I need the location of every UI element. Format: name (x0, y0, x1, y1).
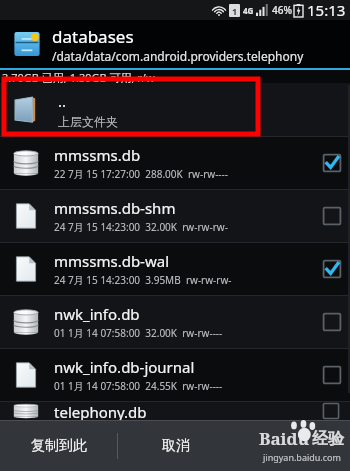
staticText: 上层文件夹 (58, 114, 118, 129)
staticText: 24 7月 15 14:23:00 3.95MB rw-rw-rw- (54, 273, 232, 287)
button[interactable]: telephony.db (0, 402, 350, 420)
staticText: mmssms.db-shm (54, 198, 176, 218)
button[interactable]: Selected mmssms.db (322, 153, 342, 173)
staticText: Baidu (259, 427, 309, 450)
button[interactable]: Select nwk_info.db (322, 312, 342, 332)
button[interactable]: Selected mmssms.db-wal (322, 259, 342, 279)
staticText: telephony.db (54, 402, 147, 420)
staticText: 经验 (312, 429, 344, 449)
button[interactable]: mmssms.db (0, 137, 350, 189)
staticText: 22 7月 15 17:27:00 288.00K rw-rw---- (54, 167, 229, 181)
staticText: 3.70GB 已用, 1.39GB 可用, r/w (2, 70, 155, 83)
staticText: nwk_info.db-journal (54, 357, 195, 377)
staticText: 复制到此 (31, 437, 87, 455)
staticText: 15:13 (307, 0, 346, 20)
staticText: .. (58, 91, 67, 111)
button[interactable]: mmssms.db-wal (0, 243, 350, 295)
button[interactable]: 取消 (118, 421, 234, 471)
staticText: 01 1月 14 07:58:00 24.55K rw-rw---- (54, 379, 223, 393)
button[interactable]: .. (0, 83, 350, 136)
staticText: jingyan.baidu.com (263, 451, 341, 463)
button[interactable]: Select mmssms.db-shm (322, 206, 342, 226)
staticText: 1 (232, 5, 238, 17)
staticText: 01 1月 14 07:58:00 32.00K rw-rw---- (54, 326, 223, 340)
staticText: 4G (243, 5, 254, 16)
staticText: 取消 (162, 437, 190, 455)
button[interactable]: nwk_info.db-journal (0, 349, 350, 401)
staticText: /data/data/com.android.providers.telepho… (52, 48, 304, 64)
staticText: 24 7月 15 14:23:00 32.00K rw-rw-rw- (54, 220, 228, 234)
button[interactable]: mmssms.db-shm (0, 190, 350, 242)
button[interactable]: databases (0, 20, 350, 68)
button[interactable]: 复制到此 (0, 421, 117, 471)
staticText: databases (52, 25, 134, 48)
staticText: mmssms.db (54, 145, 141, 165)
button[interactable]: nwk_info.db (0, 296, 350, 348)
button[interactable]: Select nwk_info.db-journal (322, 365, 342, 385)
staticText: 46% (272, 3, 292, 17)
button[interactable]: Select telephony.db (322, 402, 342, 420)
staticText: nwk_info.db (54, 304, 140, 324)
staticText: mmssms.db-wal (54, 251, 170, 271)
